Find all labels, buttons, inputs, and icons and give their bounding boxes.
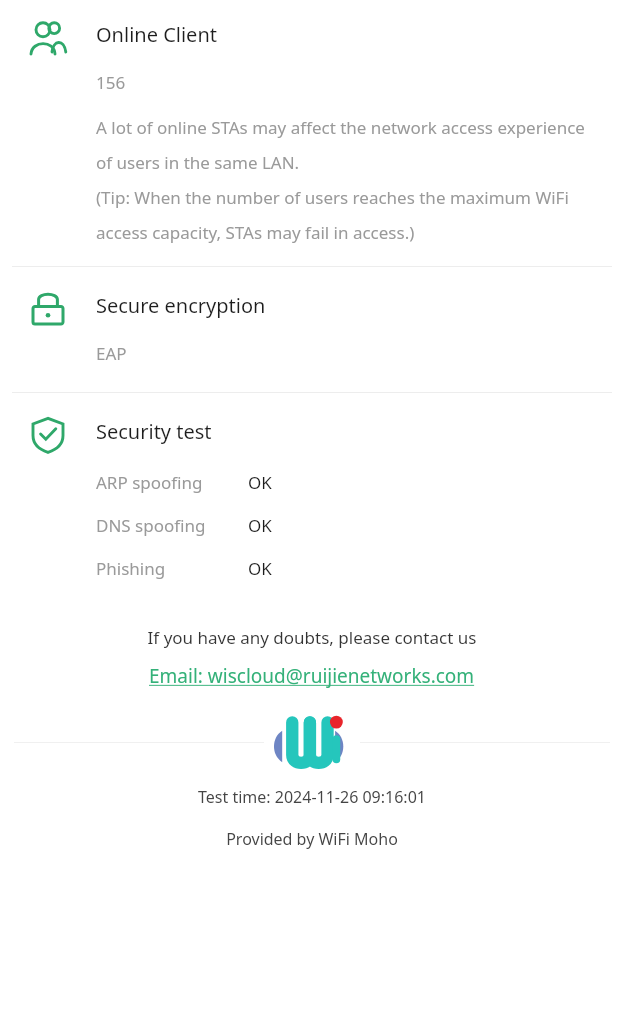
staticText: Phishing — [96, 557, 166, 580]
staticText: Security test — [96, 418, 212, 445]
other: Secure encryption — [28, 289, 68, 329]
staticText: OK — [248, 514, 272, 537]
staticText: If you have any doubts, please contact u… — [0, 626, 624, 649]
other: WiFi Moho logo — [264, 713, 360, 771]
staticText: ARP spoofing — [96, 471, 203, 494]
other: Security test — [28, 415, 68, 455]
staticText: DNS spoofing — [96, 514, 206, 537]
staticText: 156 — [96, 71, 126, 94]
staticText: A lot of online STAs may affect the netw… — [96, 116, 600, 244]
staticText: OK — [248, 557, 272, 580]
staticText: OK — [248, 471, 272, 494]
button[interactable]: Email: wiscloud@ruijienetworks.com — [145, 662, 479, 690]
button[interactable]: Online clients — [0, 0, 624, 244]
staticText: Provided by WiFi Moho — [0, 828, 624, 850]
button[interactable]: Secure encryption — [0, 267, 624, 365]
staticText: Online Client — [96, 21, 217, 48]
other: Online clients — [28, 18, 68, 58]
button[interactable]: Security test — [0, 393, 624, 580]
staticText: EAP — [96, 342, 127, 365]
staticText: Secure encryption — [96, 292, 266, 319]
staticText: Test time: 2024-11-26 09:16:01 — [0, 786, 624, 808]
